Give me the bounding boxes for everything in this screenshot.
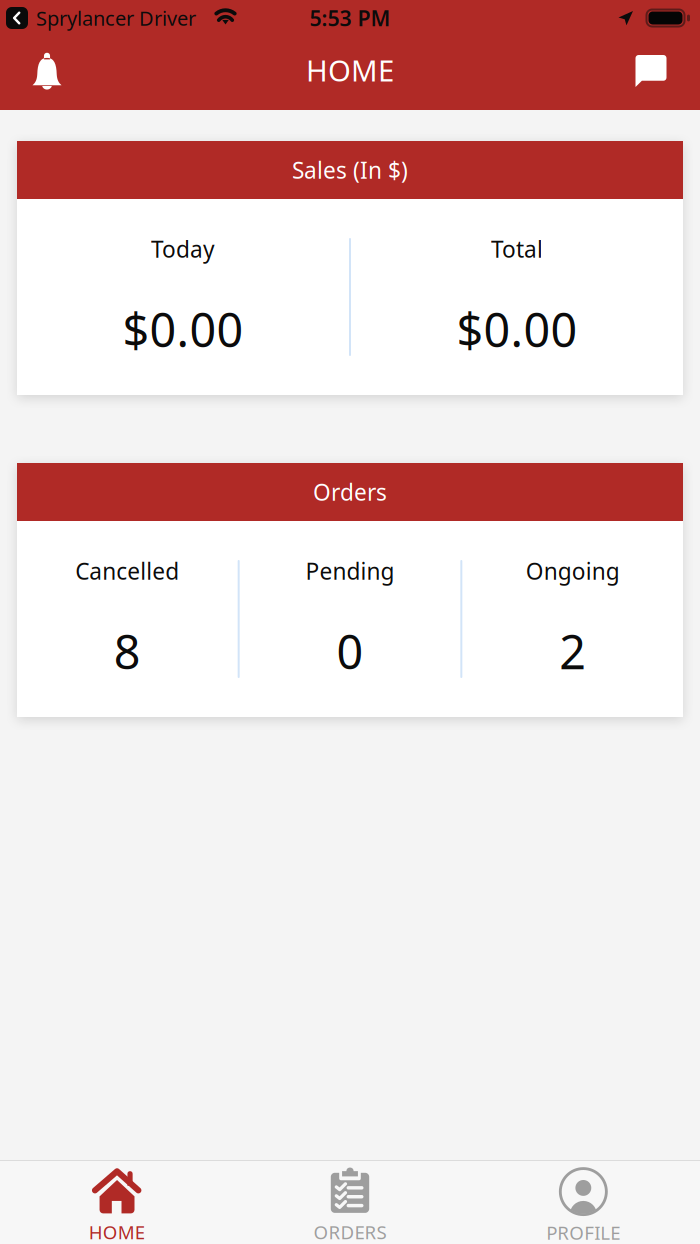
button[interactable]: Messages: [622, 36, 684, 110]
staticText: Orders: [313, 477, 387, 507]
staticText: Today: [151, 234, 215, 264]
staticText: Total: [491, 234, 543, 264]
staticText: 0: [336, 620, 363, 682]
staticText: 5:53 PM: [309, 4, 390, 32]
staticText: Cancelled: [75, 556, 179, 586]
staticText: 2: [559, 620, 586, 682]
button[interactable]: Notifications: [16, 36, 78, 110]
staticText: Ongoing: [526, 556, 620, 586]
button[interactable]: PROFILE: [467, 1154, 700, 1244]
button[interactable]: ORDERS: [233, 1155, 467, 1244]
staticText: HOME: [306, 50, 394, 89]
staticText: 8: [114, 620, 141, 682]
staticText: $0.00: [456, 298, 577, 360]
staticText: ORDERS: [313, 1220, 386, 1244]
staticText: Pending: [305, 556, 394, 586]
button[interactable]: HOME: [0, 1155, 233, 1244]
staticText: Sales (In $): [292, 155, 408, 185]
staticText: PROFILE: [546, 1220, 620, 1244]
staticText: $0.00: [122, 298, 243, 360]
staticText: HOME: [89, 1220, 145, 1244]
staticText: Sprylancer Driver: [36, 5, 196, 31]
